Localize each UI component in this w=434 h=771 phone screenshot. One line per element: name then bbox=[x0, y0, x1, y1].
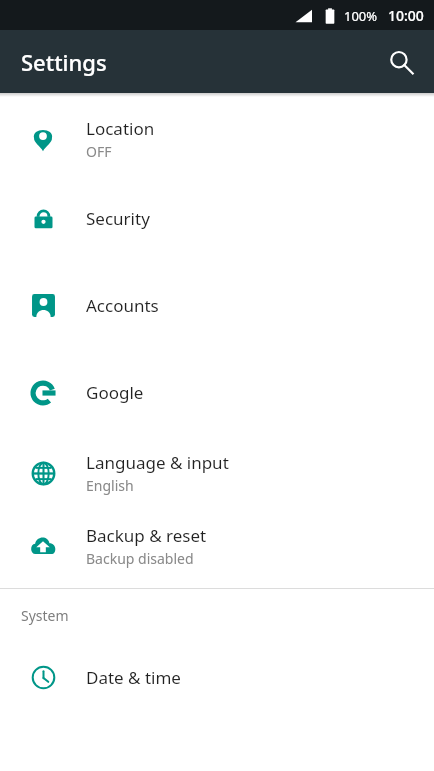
staticText: Google bbox=[86, 381, 144, 404]
staticText: System bbox=[21, 606, 69, 625]
staticText: Settings bbox=[21, 47, 107, 77]
button[interactable]: Date & time bbox=[0, 641, 434, 713]
staticText: Backup disabled bbox=[86, 549, 194, 568]
button[interactable]: Search bbox=[377, 38, 425, 86]
staticText: English bbox=[86, 476, 134, 495]
staticText: 100% bbox=[344, 7, 378, 25]
staticText: Backup & reset bbox=[86, 524, 207, 547]
staticText: Accounts bbox=[86, 294, 159, 317]
button[interactable]: Security bbox=[0, 175, 434, 262]
button[interactable]: Accounts bbox=[0, 262, 434, 349]
button[interactable]: Backup & reset bbox=[0, 510, 434, 582]
button[interactable]: Google bbox=[0, 349, 434, 436]
staticText: Security bbox=[86, 207, 150, 230]
staticText: Location bbox=[86, 117, 155, 140]
button[interactable]: Location bbox=[0, 103, 434, 175]
staticText: 10:00 bbox=[388, 6, 424, 25]
staticText: Date & time bbox=[86, 666, 181, 689]
button[interactable]: Language & input bbox=[0, 436, 434, 510]
staticText: OFF bbox=[86, 142, 112, 161]
staticText: Language & input bbox=[86, 451, 229, 474]
